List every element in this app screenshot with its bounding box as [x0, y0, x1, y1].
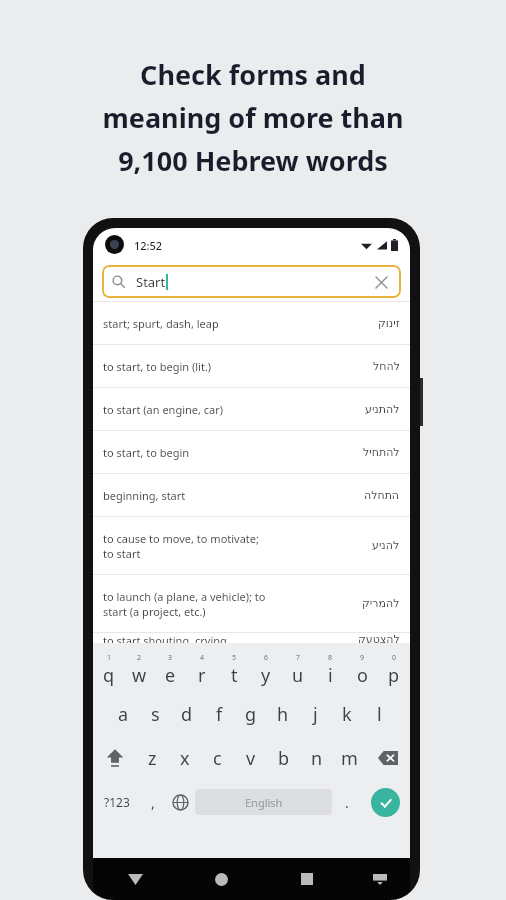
button[interactable]: k — [331, 692, 363, 736]
button[interactable]: 6 — [250, 648, 282, 692]
staticText: y — [261, 663, 271, 688]
button[interactable]: to start (an engine, car) — [93, 388, 410, 430]
staticText: 3 — [168, 653, 173, 663]
button[interactable]: 4 — [186, 648, 218, 692]
button[interactable]: x — [168, 736, 201, 780]
staticText: c — [213, 746, 222, 771]
staticText: English — [245, 795, 283, 810]
button[interactable]: l — [363, 692, 395, 736]
button[interactable]: Clear search — [371, 272, 391, 292]
staticText: to start, to begin (lit.) — [103, 359, 373, 374]
button[interactable]: English — [195, 789, 332, 815]
staticText: to cause to move, to motivate; to start — [103, 531, 372, 561]
button[interactable]: Change language — [166, 780, 195, 824]
staticText: 9 — [360, 653, 365, 663]
button[interactable]: 8 — [314, 648, 346, 692]
staticText: 5 — [232, 653, 237, 663]
staticText: להצטעק — [358, 633, 400, 643]
staticText: b — [278, 746, 290, 771]
staticText: 7 — [296, 653, 301, 663]
button[interactable]: Hide keyboard — [350, 858, 410, 900]
button[interactable]: Back — [93, 858, 178, 900]
button[interactable]: z — [136, 736, 168, 780]
staticText: s — [151, 702, 160, 727]
staticText: k — [342, 702, 352, 727]
staticText: 8 — [328, 653, 333, 663]
staticText: t — [231, 663, 238, 688]
staticText: h — [277, 702, 289, 727]
staticText: m — [341, 746, 358, 771]
button[interactable]: d — [171, 692, 203, 736]
staticText: . — [345, 793, 349, 812]
button[interactable]: Backspace — [366, 736, 410, 780]
button[interactable]: g — [235, 692, 267, 736]
staticText: d — [181, 702, 193, 727]
button[interactable]: Shift — [93, 736, 136, 780]
button[interactable]: j — [299, 692, 331, 736]
staticText: j — [313, 702, 318, 727]
button[interactable]: , — [140, 780, 166, 824]
button[interactable]: ?123 — [93, 780, 140, 824]
button[interactable]: f — [203, 692, 235, 736]
staticText: 4 — [200, 653, 205, 663]
button[interactable]: 0 — [378, 648, 410, 692]
button[interactable]: h — [267, 692, 299, 736]
button[interactable]: s — [139, 692, 171, 736]
button[interactable]: b — [267, 736, 300, 780]
button[interactable]: Recents — [264, 858, 350, 900]
button[interactable]: c — [201, 736, 234, 780]
button[interactable]: Enter — [371, 788, 400, 817]
staticText: e — [165, 663, 176, 688]
staticText: v — [246, 746, 256, 771]
staticText: f — [216, 702, 223, 727]
staticText: a — [118, 702, 129, 727]
staticText: start; spurt, dash, leap — [103, 316, 378, 331]
staticText: להחל — [373, 360, 400, 373]
staticText: to start shouting, crying — [103, 633, 358, 643]
button[interactable]: 7 — [282, 648, 314, 692]
button[interactable]: 2 — [124, 648, 155, 692]
staticText: , — [151, 793, 155, 812]
button[interactable]: to cause to move, to motivate; to start — [93, 517, 410, 574]
staticText: Start — [136, 273, 166, 291]
button[interactable]: 1 — [93, 648, 124, 692]
button[interactable]: Start — [102, 265, 401, 298]
staticText: i — [328, 663, 333, 688]
staticText: w — [132, 663, 147, 688]
staticText: q — [103, 663, 115, 688]
staticText: 1 — [107, 653, 112, 663]
staticText: ?123 — [104, 794, 130, 810]
staticText: meaning of more than — [102, 99, 404, 136]
staticText: להתחיל — [363, 446, 400, 459]
staticText: x — [180, 746, 190, 771]
staticText: 9,100 Hebrew words — [118, 142, 388, 179]
staticText: התחלה — [364, 489, 400, 502]
staticText: 2 — [137, 653, 142, 663]
button[interactable]: to start shouting, crying — [93, 633, 410, 643]
staticText: g — [245, 702, 257, 727]
staticText: r — [198, 663, 206, 688]
button[interactable]: 5 — [218, 648, 250, 692]
button[interactable]: a — [108, 692, 139, 736]
button[interactable]: . — [332, 780, 361, 824]
button[interactable]: n — [300, 736, 333, 780]
staticText: l — [377, 702, 382, 727]
staticText: 6 — [264, 653, 269, 663]
staticText: n — [311, 746, 323, 771]
staticText: 12:52 — [134, 238, 163, 253]
button[interactable]: 9 — [346, 648, 378, 692]
staticText: beginning, start — [103, 488, 364, 503]
staticText: o — [357, 663, 368, 688]
button[interactable]: 3 — [155, 648, 186, 692]
button[interactable]: to start, to begin — [93, 431, 410, 473]
button[interactable]: beginning, start — [93, 474, 410, 516]
button[interactable]: v — [234, 736, 267, 780]
staticText: זינוק — [378, 317, 400, 330]
staticText: to launch (a plane, a vehicle); to start… — [103, 589, 362, 619]
button[interactable]: to launch (a plane, a vehicle); to start… — [93, 575, 410, 632]
staticText: Check forms and — [140, 56, 366, 93]
button[interactable]: start; spurt, dash, leap — [93, 302, 410, 344]
button[interactable]: m — [333, 736, 366, 780]
button[interactable]: Home — [178, 858, 264, 900]
button[interactable]: to start, to begin (lit.) — [93, 345, 410, 387]
